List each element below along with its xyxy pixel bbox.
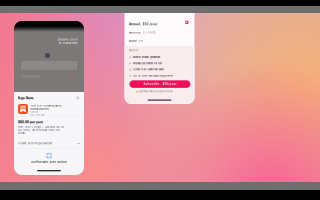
button[interactable]: Subscribe · $50/year [129,80,190,88]
staticText: Auto-renewable [30,114,44,116]
staticText: The Ice Cream Diaries Subscription [30,104,61,110]
staticText: Personalized content via text [133,62,162,65]
staticText: BENEFITS [129,49,138,52]
staticText: $50 /year [143,22,158,26]
staticText: Free [139,39,143,43]
staticText: Annual: [129,22,141,26]
staticText: ✕ [77,96,79,99]
button[interactable]: Close [76,96,79,100]
staticText: 20% off more than subscribing monthly [133,74,173,77]
staticText: auto-renews. Plan automatically renews u… [18,129,59,131]
staticText: ✚ [185,20,188,24]
staticText: Series, Author's Settings — subscription… [18,126,64,128]
staticText: Monthly product giveaways [133,56,160,58]
staticText: Double Click [58,38,78,41]
staticText: to Subscribe [59,41,78,45]
staticText: Substack [30,111,38,113]
staticText: None: [129,39,137,43]
staticText: Monthly: [129,31,141,34]
staticText: ••• [77,142,80,145]
staticText: App Store [17,96,33,100]
staticText: 🔒 [135,90,137,93]
staticText: Access to all subscriber posts [133,68,164,71]
staticText: cancelled. [18,132,26,134]
staticText: Subscription will be processed securely [138,90,172,93]
staticText: Confirm with Side Button [30,160,67,164]
staticText: Account: alice.ortiz@icloud.com [18,142,52,145]
staticText: $80.00 per year [18,120,43,124]
staticText: $5 /month [143,31,156,34]
staticText: Subscribe · $50/year [143,82,176,86]
